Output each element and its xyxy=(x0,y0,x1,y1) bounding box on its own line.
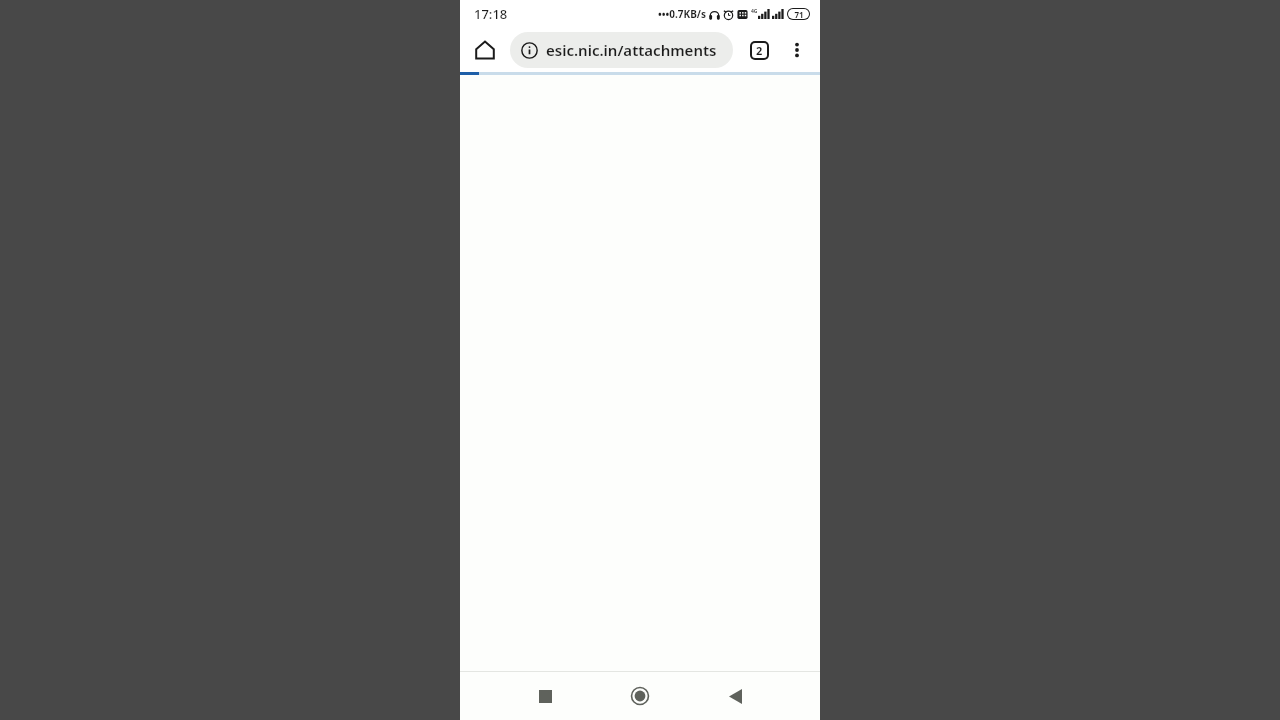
button[interactable]: Home xyxy=(618,674,662,718)
staticText: 4G xyxy=(751,8,758,15)
staticText: 71 xyxy=(794,9,804,19)
button[interactable]: Back xyxy=(713,674,757,718)
button[interactable]: Home xyxy=(469,34,501,66)
staticText: 17:18 xyxy=(474,5,508,23)
button[interactable]: Tabs, 2 open xyxy=(743,34,775,66)
staticText: esic.nic.in/attachments xyxy=(546,40,717,60)
staticText: 2 xyxy=(756,43,763,58)
staticText: •••0.7KB/s xyxy=(658,7,706,21)
button[interactable]: Recent apps xyxy=(523,674,567,718)
button[interactable]: More options xyxy=(781,34,813,66)
button[interactable]: esic.nic.in/attachments xyxy=(510,32,733,68)
